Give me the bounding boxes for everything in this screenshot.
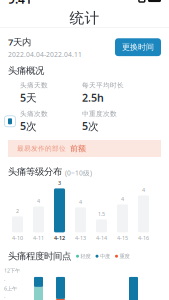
- staticText: 头痛概况: [8, 65, 44, 76]
- staticText: 头痛天数: [20, 81, 48, 89]
- staticText: 12下午: [4, 267, 20, 274]
- staticText: 4: [37, 197, 40, 204]
- staticText: 前额: [70, 144, 86, 153]
- staticText: ·: [4, 293, 5, 300]
- staticText: 最易发作的部位: [17, 144, 66, 153]
- staticText: 重度: [119, 253, 129, 259]
- staticText: 1.5: [98, 210, 105, 217]
- staticText: 5天: [20, 90, 37, 105]
- staticText: 头痛等级分布: [8, 166, 62, 177]
- staticText: 更换时间: [122, 42, 154, 52]
- staticText: 6上午: [4, 285, 17, 292]
- staticText: 7天内: [8, 36, 31, 48]
- staticText: 轻度: [80, 253, 90, 259]
- staticText: 头痛程度时间点: [8, 250, 71, 262]
- staticText: 4-15: [117, 234, 128, 241]
- staticText: 头痛次数: [20, 110, 48, 118]
- staticText: 2022.04.04-2022.04.11: [8, 50, 82, 59]
- staticText: ·: [4, 276, 5, 283]
- staticText: 4-16: [138, 234, 149, 241]
- staticText: 9:41: [8, 0, 32, 7]
- staticText: 4-13: [75, 234, 86, 241]
- staticText: 2.5h: [82, 90, 104, 105]
- staticText: 中重度次数: [82, 110, 117, 118]
- staticText: 5次: [20, 119, 37, 133]
- staticText: 统计: [69, 9, 99, 27]
- staticText: 4: [121, 195, 124, 202]
- staticText: 3: [58, 179, 61, 186]
- staticText: 每天平均时长: [82, 81, 124, 89]
- staticText: (0~10级): [65, 169, 92, 177]
- staticText: 5次: [82, 119, 99, 133]
- staticText: 4-12: [54, 234, 65, 241]
- staticText: 4: [79, 198, 82, 205]
- staticText: 4: [142, 186, 145, 193]
- staticText: 4-10: [12, 234, 23, 241]
- staticText: 4-11: [33, 234, 44, 241]
- staticText: 中度: [100, 253, 110, 259]
- staticText: 2: [16, 207, 19, 214]
- staticText: 4-14: [96, 234, 107, 241]
- button[interactable]: 更换时间: [115, 38, 161, 56]
